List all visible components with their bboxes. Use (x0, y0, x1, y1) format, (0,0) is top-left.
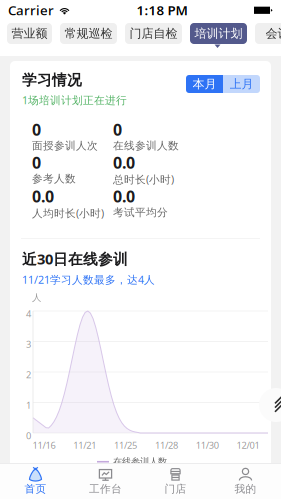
staticText: 0 (32, 119, 41, 140)
button[interactable]: 工作台 (70, 463, 140, 498)
button[interactable]: 首页 (0, 463, 70, 498)
staticText: 近30日在线参训 (22, 249, 128, 268)
button[interactable]: 常规巡检 (60, 23, 117, 44)
staticText: 0 (26, 429, 31, 442)
staticText: 营业额 (11, 26, 47, 41)
button[interactable]: 上月 (223, 75, 260, 93)
staticText: 0 (32, 152, 41, 173)
staticText: 人 (32, 292, 41, 303)
staticText: 1:18 PM (136, 1, 187, 19)
staticText: 11/28 (155, 439, 178, 451)
staticText: 0.0 (32, 186, 54, 207)
button[interactable]: 门店 (140, 463, 210, 498)
staticText: 11/30 (196, 439, 219, 451)
staticText: 11/21学习人数最多，达4人 (22, 272, 155, 287)
staticText: 11/21 (73, 439, 96, 451)
staticText: 在线参训人数 (113, 456, 167, 467)
staticText: 人均时长(小时) (32, 206, 104, 220)
staticText: 0 (113, 119, 122, 140)
button[interactable]: 培训计划 (190, 23, 247, 44)
staticText: 首页 (24, 482, 46, 495)
staticText: 考试平均分 (113, 206, 168, 219)
staticText: 培训计划 (194, 26, 242, 41)
staticText: 0.0 (113, 152, 135, 173)
staticText: 面授参训人次 (32, 139, 98, 152)
staticText: 4 (26, 307, 31, 320)
staticText: Carrier (8, 1, 54, 19)
button[interactable]: 我的 (210, 463, 280, 498)
staticText: 上月 (229, 77, 253, 91)
button[interactable]: 营业额 (7, 23, 52, 44)
staticText: 会议 (265, 26, 281, 41)
staticText: 11/25 (114, 439, 137, 451)
staticText: 在线参训人数 (113, 139, 179, 152)
staticText: 门店 (164, 482, 186, 495)
staticText: 常规巡检 (64, 26, 112, 41)
staticText: 门店自检 (129, 26, 177, 41)
staticText: 本月 (192, 77, 216, 91)
staticText: 总时长(小时) (113, 172, 174, 186)
button[interactable]: 会议 (255, 23, 281, 44)
staticText: 12/01 (236, 439, 259, 451)
staticText: 学习情况 (22, 71, 82, 89)
staticText: 工作台 (89, 482, 122, 495)
staticText: 我的 (234, 482, 256, 495)
staticText: 参考人数 (32, 172, 76, 185)
staticText: 2 (26, 368, 31, 381)
staticText: 1 (26, 399, 31, 411)
button[interactable]: 门店自检 (125, 23, 182, 44)
staticText: 0.0 (113, 186, 135, 207)
staticText: 11/16 (32, 439, 55, 451)
button[interactable]: 本月 (186, 75, 223, 93)
staticText: 3 (26, 338, 31, 350)
staticText: 1场培训计划正在进行 (22, 93, 127, 107)
